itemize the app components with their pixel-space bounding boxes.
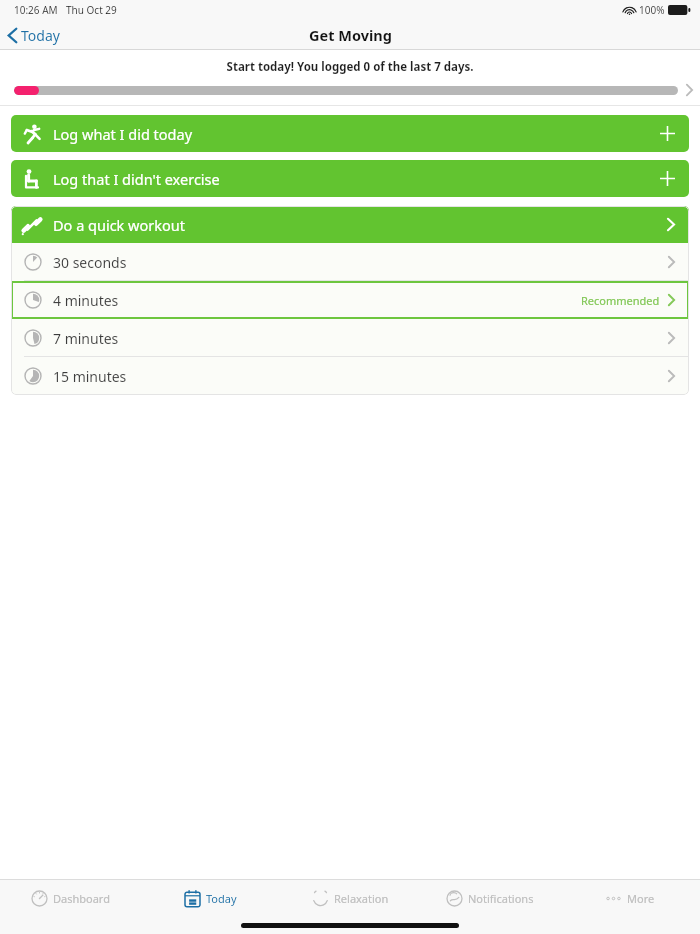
staticText: Relaxation — [334, 891, 389, 906]
button[interactable]: Log that I didn't exercise — [11, 160, 689, 197]
button[interactable]: 4 minutes — [11, 281, 689, 319]
staticText: Start today! You logged 0 of the last 7 … — [0, 59, 700, 75]
button[interactable]: Relaxation — [280, 880, 420, 916]
staticText: 7 minutes — [53, 329, 119, 348]
staticText: Notifications — [468, 891, 534, 906]
staticText: Dashboard — [53, 891, 110, 906]
button[interactable]: More — [560, 880, 700, 916]
staticText: More — [627, 891, 655, 906]
button[interactable]: Dashboard — [0, 880, 140, 916]
button[interactable]: Notifications — [420, 880, 560, 916]
button[interactable]: 7 minutes — [11, 319, 689, 357]
staticText: Do a quick workout — [53, 215, 185, 235]
button[interactable]: Today — [140, 880, 280, 916]
staticText: 4 minutes — [53, 291, 119, 310]
button[interactable]: 15 minutes — [11, 357, 689, 395]
staticText: Today — [21, 26, 60, 45]
staticText: 30 seconds — [53, 253, 127, 272]
button[interactable]: Today — [0, 22, 70, 49]
staticText: Thu Oct 29 — [66, 3, 117, 17]
staticText: 100% — [639, 3, 665, 17]
button[interactable]: Do a quick workout — [11, 206, 689, 243]
staticText: Log what I did today — [53, 124, 193, 144]
staticText: Recommended — [581, 293, 660, 308]
button[interactable]: 30 seconds — [11, 243, 689, 281]
staticText: 10:26 AM — [14, 3, 58, 17]
button[interactable]: Start today! You logged 0 of the last 7 … — [0, 50, 700, 106]
staticText: Log that I didn't exercise — [53, 169, 220, 189]
button[interactable]: Log what I did today — [11, 115, 689, 152]
staticText: Today — [206, 891, 237, 906]
staticText: 15 minutes — [53, 367, 127, 386]
staticText: Get Moving — [309, 25, 392, 45]
